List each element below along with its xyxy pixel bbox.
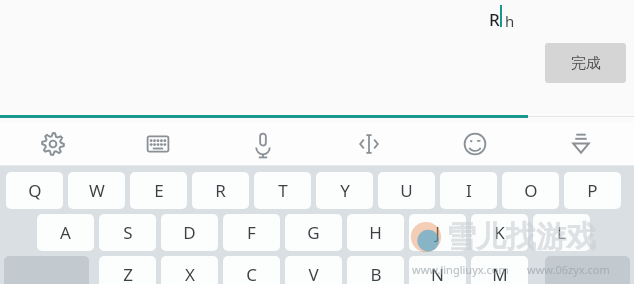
staticText: www.lingliuyx.com [412, 262, 509, 277]
button[interactable]: H [347, 214, 404, 251]
staticText: R [489, 8, 500, 31]
staticText: P [587, 179, 598, 202]
button[interactable]: C [223, 256, 280, 284]
button[interactable]: Move cursor [316, 122, 422, 166]
staticText: G [307, 221, 320, 244]
button[interactable]: Voice input [210, 122, 316, 166]
staticText: L [557, 221, 566, 244]
button[interactable]: U [378, 172, 435, 209]
button[interactable]: D [161, 214, 218, 251]
staticText: www.06zyx.com [527, 262, 610, 277]
button[interactable]: A [37, 214, 94, 251]
button[interactable]: Z [99, 256, 156, 284]
button[interactable]: F [223, 214, 280, 251]
staticText: B [370, 263, 382, 284]
staticText: Y [340, 179, 350, 202]
staticText: h [505, 11, 515, 31]
staticText: O [524, 179, 538, 202]
button[interactable]: G [285, 214, 342, 251]
button[interactable]: W [68, 172, 125, 209]
button[interactable]: S [99, 214, 156, 251]
staticText: T [278, 179, 288, 202]
button[interactable]: Emoji [422, 122, 528, 166]
staticText: 完成 [571, 54, 601, 73]
staticText: V [308, 263, 319, 284]
button[interactable]: N [409, 256, 466, 284]
staticText: I [466, 179, 472, 202]
staticText: U [400, 179, 413, 202]
button[interactable]: B [347, 256, 404, 284]
button[interactable]: T [254, 172, 311, 209]
button[interactable]: Settings [0, 122, 105, 166]
staticText: D [183, 221, 196, 244]
staticText: E [154, 179, 164, 202]
button[interactable]: X [161, 256, 218, 284]
staticText: Q [28, 179, 42, 202]
button[interactable]: Q [6, 172, 63, 209]
button[interactable]: O [502, 172, 559, 209]
button[interactable]: R [192, 172, 249, 209]
button[interactable]: Keyboard layout [105, 122, 210, 166]
staticText: X [185, 263, 195, 284]
button[interactable]: I [440, 172, 497, 209]
button[interactable]: E [130, 172, 187, 209]
staticText: F [247, 221, 256, 244]
staticText: 雪儿找游戏 [446, 218, 596, 256]
staticText: R [215, 179, 226, 202]
staticText: S [123, 221, 133, 244]
button[interactable]: Y [316, 172, 373, 209]
staticText: W [89, 179, 105, 202]
button[interactable]: P [564, 172, 621, 209]
staticText: A [60, 221, 71, 244]
button[interactable]: L [533, 214, 590, 251]
button[interactable]: Hide keyboard [528, 122, 634, 166]
staticText: H [369, 221, 382, 244]
button[interactable]: 完成 [545, 43, 626, 83]
staticText: M [492, 263, 508, 284]
staticText: Z [123, 263, 133, 284]
button[interactable]: V [285, 256, 342, 284]
staticText: N [431, 263, 444, 284]
staticText: C [246, 263, 257, 284]
button[interactable]: J [409, 214, 466, 251]
staticText: J [435, 221, 440, 244]
button[interactable]: M [471, 256, 528, 284]
staticText: K [494, 221, 505, 244]
button[interactable]: K [471, 214, 528, 251]
button[interactable]: Backspace [545, 256, 630, 284]
